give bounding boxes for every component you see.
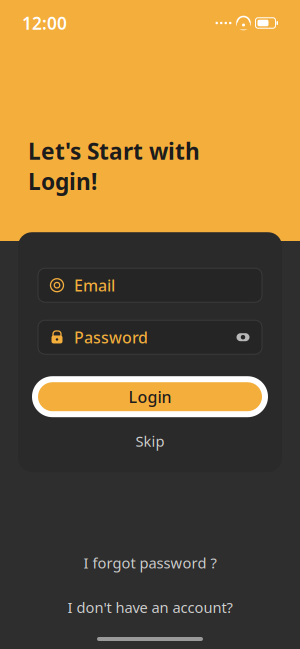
button[interactable]: Password bbox=[38, 320, 262, 354]
button[interactable]: I forgot password ? bbox=[73, 547, 226, 578]
staticText: Let's Start with Login! bbox=[28, 136, 200, 196]
button[interactable]: I don't have an account? bbox=[57, 591, 242, 623]
button[interactable]: Email bbox=[38, 268, 262, 302]
staticText: Login bbox=[128, 386, 171, 407]
button[interactable]: Skip bbox=[38, 423, 262, 459]
button[interactable]: Login bbox=[38, 382, 262, 411]
staticText: Skip bbox=[135, 431, 164, 451]
staticText: I don't have an account? bbox=[67, 597, 232, 617]
staticText: Email bbox=[74, 275, 115, 296]
staticText: Password bbox=[74, 327, 148, 348]
staticText: I forgot password ? bbox=[83, 553, 216, 572]
staticText: 12:00 bbox=[22, 11, 67, 34]
